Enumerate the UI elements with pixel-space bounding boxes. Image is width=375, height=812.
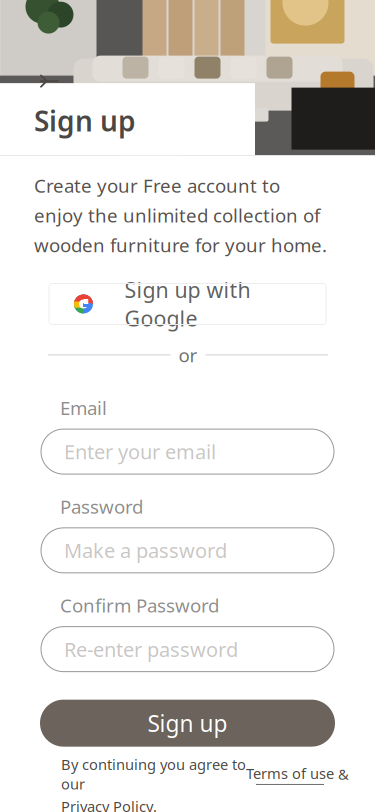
button[interactable]: Sign up — [40, 700, 335, 747]
button[interactable]: Re-enter password — [41, 627, 334, 672]
staticText: or — [178, 342, 197, 367]
staticText: Make a password — [64, 537, 227, 564]
staticText: Terms of use — [246, 763, 334, 783]
button[interactable]: Sign up with Google — [49, 283, 326, 324]
staticText: Privacy Policy. — [61, 797, 157, 812]
button[interactable]: Make a password — [41, 528, 334, 573]
staticText: Re-enter password — [64, 636, 238, 662]
staticText: Create your Free account to enjoy the un… — [34, 173, 327, 257]
staticText: By continuing you agree to our — [61, 755, 246, 794]
staticText: Sign up with Google — [124, 276, 250, 332]
button[interactable]: Back — [34, 68, 68, 94]
staticText: Enter your email — [64, 438, 216, 465]
staticText: Sign up — [147, 708, 227, 738]
button[interactable]: Terms of use — [246, 763, 334, 785]
button[interactable]: Privacy Policy. — [61, 797, 157, 812]
button[interactable]: Enter your email — [41, 429, 334, 474]
staticText: Confirm Password — [60, 593, 219, 618]
staticText: Sign up — [34, 102, 136, 139]
staticText: Email — [60, 395, 107, 420]
staticText: & — [334, 764, 349, 784]
staticText: Password — [60, 494, 143, 519]
